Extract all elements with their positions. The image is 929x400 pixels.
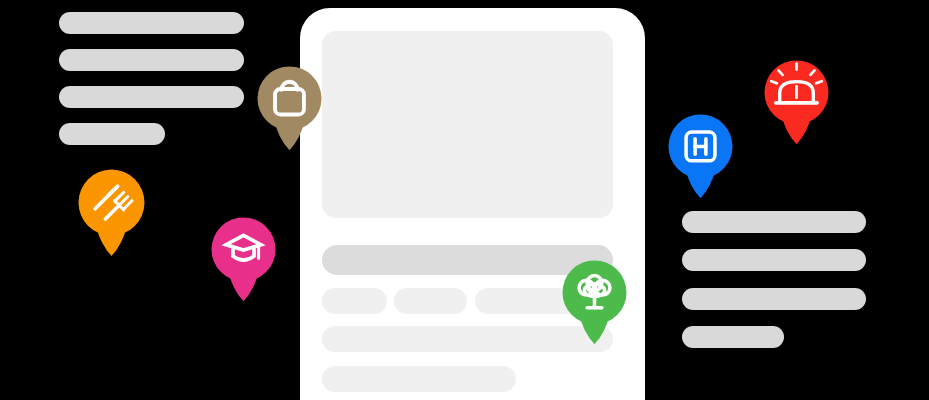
- button[interactable]: Parks: [556, 254, 633, 356]
- button[interactable]: [682, 326, 784, 348]
- button[interactable]: [682, 288, 866, 310]
- button[interactable]: [682, 211, 866, 233]
- button[interactable]: [475, 288, 613, 314]
- button[interactable]: [682, 249, 866, 271]
- button[interactable]: [394, 288, 467, 314]
- button[interactable]: Shopping: [251, 60, 328, 162]
- button[interactable]: Restaurants: [72, 163, 151, 269]
- button[interactable]: [59, 123, 165, 145]
- button[interactable]: [322, 288, 387, 314]
- button[interactable]: [59, 49, 244, 71]
- button[interactable]: Emergency: [758, 54, 835, 156]
- button[interactable]: Hospital: [662, 108, 739, 210]
- button[interactable]: Education: [205, 211, 282, 313]
- button[interactable]: [59, 86, 244, 108]
- button[interactable]: [59, 12, 244, 34]
